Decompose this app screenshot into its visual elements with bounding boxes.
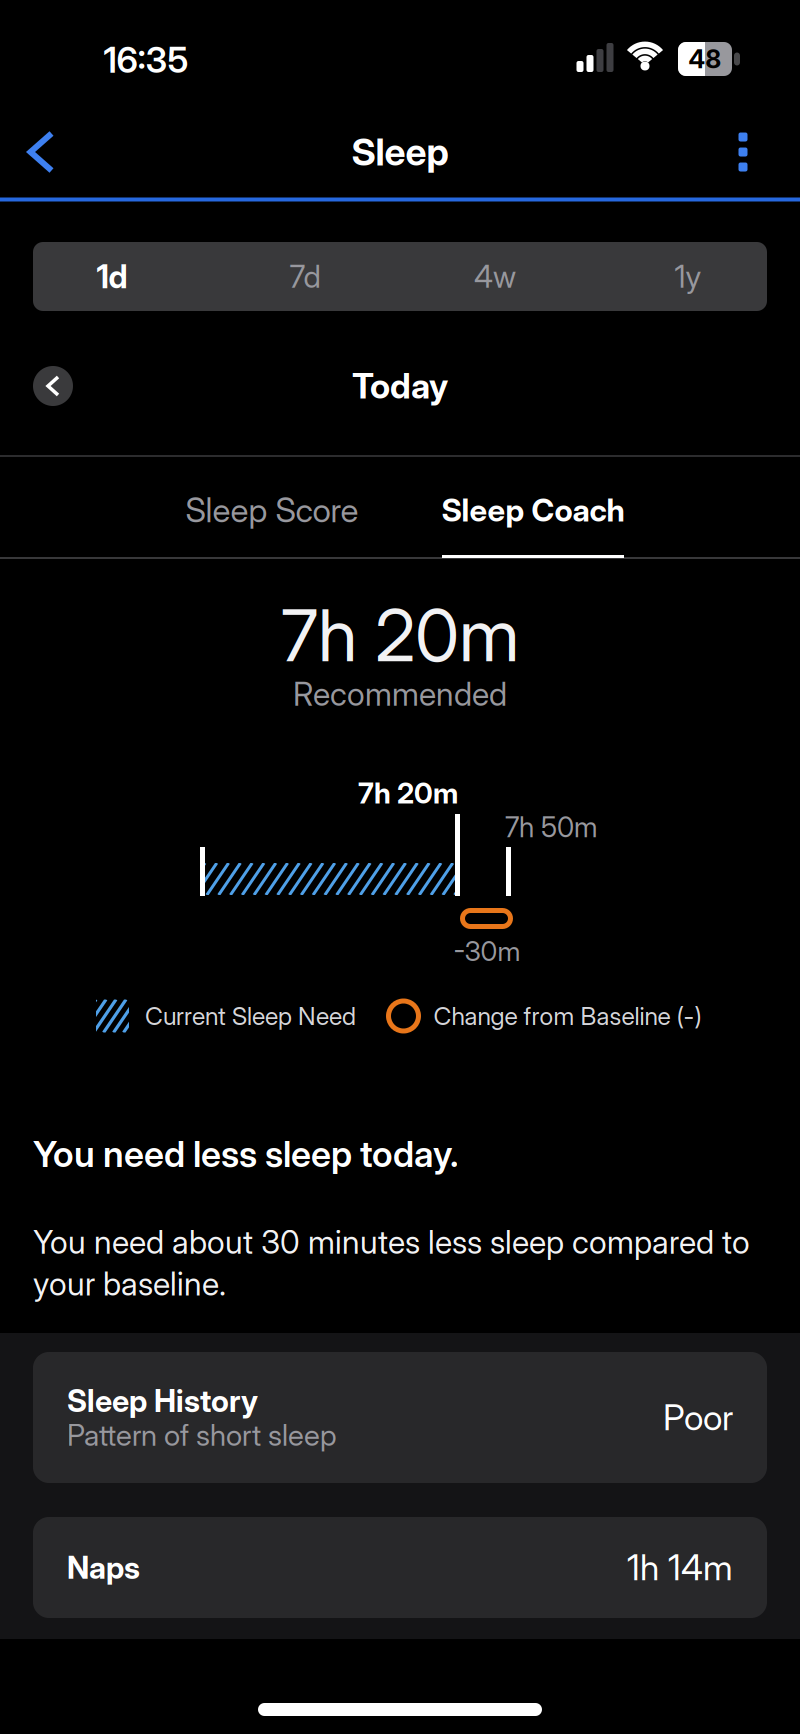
staticText: Naps (67, 1549, 140, 1586)
staticText: Recommended (293, 675, 507, 713)
staticText: 48 (688, 44, 721, 74)
button[interactable]: More options (721, 122, 765, 182)
staticText: Sleep History (67, 1382, 258, 1419)
staticText: -30m (453, 934, 520, 968)
button[interactable]: 4w (400, 242, 583, 311)
button[interactable]: Previous day (33, 366, 73, 406)
staticText: Sleep Coach (441, 491, 624, 529)
staticText: 1y (674, 258, 701, 295)
staticText: 1h 14m (627, 1546, 733, 1589)
staticText: You need about 30 minutes less sleep com… (33, 1223, 750, 1261)
staticText: Today (352, 365, 448, 407)
button[interactable]: Naps (33, 1517, 767, 1618)
staticText: 7d (289, 258, 320, 295)
staticText: 16:35 (103, 39, 188, 81)
staticText: Current Sleep Need (145, 1001, 356, 1031)
staticText: You need less sleep today. (33, 1132, 459, 1176)
staticText: 4w (474, 258, 516, 295)
staticText: Sleep (351, 129, 448, 175)
button[interactable]: Back (15, 120, 67, 184)
staticText: Poor (663, 1396, 733, 1439)
staticText: your baseline. (33, 1264, 226, 1303)
staticText: Pattern of short sleep (67, 1417, 337, 1453)
staticText: Sleep Score (185, 490, 358, 530)
staticText: 1d (96, 257, 127, 296)
staticText: Change from Baseline (-) (433, 1001, 701, 1031)
button[interactable]: 7d (216, 242, 400, 311)
button[interactable]: Sleep History (33, 1352, 767, 1483)
button[interactable]: 1y (583, 242, 767, 311)
staticText: 7h 20m (281, 591, 519, 678)
staticText: 7h 20m (358, 776, 458, 810)
staticText: 7h 50m (505, 810, 597, 844)
button[interactable]: Sleep Score (132, 470, 412, 550)
button[interactable]: Sleep Coach (393, 470, 673, 550)
button[interactable]: 1d (33, 242, 216, 311)
